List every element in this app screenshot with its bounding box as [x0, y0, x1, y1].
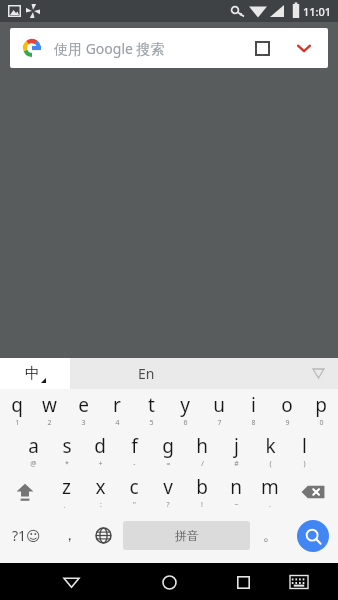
button[interactable]: q	[0, 389, 33, 430]
staticText: 。	[263, 527, 277, 545]
staticText: ?	[166, 500, 170, 510]
staticText: 4	[115, 418, 120, 428]
staticText: "	[133, 500, 136, 510]
button[interactable]: u	[202, 389, 236, 430]
staticText: y	[180, 392, 190, 418]
staticText: 5	[149, 418, 154, 428]
staticText: q	[11, 392, 23, 418]
button[interactable]: o	[270, 389, 304, 430]
staticText: En	[138, 364, 155, 383]
staticText: -	[133, 459, 136, 469]
button[interactable]: Change language	[86, 512, 120, 559]
button[interactable]: m	[253, 471, 287, 512]
staticText: b	[196, 474, 208, 500]
staticText: :	[100, 500, 102, 510]
button[interactable]: k	[253, 430, 287, 471]
staticText: 使用 Google 搜索	[54, 39, 165, 58]
staticText: j	[234, 433, 239, 459]
button[interactable]: Recents	[226, 565, 260, 599]
staticText: r	[113, 392, 121, 418]
staticText: ，	[62, 526, 77, 545]
staticText: !	[201, 500, 203, 510]
staticText: e	[78, 392, 89, 418]
staticText: 3	[81, 418, 86, 428]
staticText: 6	[183, 418, 188, 428]
staticText: f	[131, 433, 138, 459]
button[interactable]: Expand	[292, 36, 316, 60]
button[interactable]: 拼音	[123, 521, 250, 550]
staticText: *	[65, 459, 69, 469]
button[interactable]: l	[287, 430, 321, 471]
staticText: n	[230, 474, 242, 500]
staticText: ~	[234, 500, 239, 510]
button[interactable]: p	[304, 389, 338, 430]
button[interactable]: j	[219, 430, 253, 471]
staticText: @	[30, 459, 37, 469]
button[interactable]: a	[17, 430, 50, 471]
staticText: h	[196, 433, 208, 459]
staticText: ?1☺	[12, 526, 41, 545]
staticText: d	[94, 433, 106, 459]
button[interactable]: h	[185, 430, 219, 471]
button[interactable]: 使用 Google 搜索	[10, 28, 328, 68]
button[interactable]: z	[50, 471, 83, 512]
staticText: m	[261, 474, 279, 500]
button[interactable]: Google Lens	[250, 36, 274, 60]
staticText: w	[42, 392, 57, 418]
staticText: =	[166, 459, 171, 469]
button[interactable]: ?1☺	[0, 512, 52, 559]
button[interactable]: 中	[0, 358, 70, 389]
staticText: g	[162, 433, 174, 459]
staticText: 9	[285, 418, 290, 428]
button[interactable]: ，	[52, 512, 86, 559]
button[interactable]: b	[185, 471, 219, 512]
button[interactable]: d	[83, 430, 117, 471]
button[interactable]: v	[151, 471, 185, 512]
staticText: #	[234, 459, 239, 469]
staticText: o	[281, 392, 293, 418]
staticText: (	[269, 459, 272, 469]
staticText: z	[62, 474, 71, 500]
button[interactable]: f	[117, 430, 151, 471]
staticText: 0	[319, 418, 324, 428]
button[interactable]: Shift	[0, 471, 50, 512]
staticText: 1	[15, 418, 20, 428]
staticText: k	[265, 433, 276, 459]
button[interactable]: x	[83, 471, 117, 512]
staticText: p	[315, 392, 327, 418]
button[interactable]: g	[151, 430, 185, 471]
button[interactable]: Switch keyboard	[282, 565, 316, 599]
button[interactable]: Back	[54, 565, 88, 599]
button[interactable]: Home	[152, 565, 186, 599]
staticText: 2	[47, 418, 52, 428]
staticText: a	[28, 433, 39, 459]
staticText: t	[148, 392, 155, 418]
staticText: x	[95, 474, 106, 500]
staticText: 8	[251, 418, 256, 428]
staticText: /	[201, 459, 204, 469]
button[interactable]: c	[117, 471, 151, 512]
staticText: l	[302, 433, 307, 459]
button[interactable]: r	[100, 389, 134, 430]
button[interactable]: i	[236, 389, 270, 430]
button[interactable]: y	[168, 389, 202, 430]
staticText: u	[213, 392, 225, 418]
staticText: 拼音	[175, 528, 199, 543]
button[interactable]: s	[50, 430, 83, 471]
button[interactable]: En	[70, 358, 338, 389]
staticText: 7	[217, 418, 222, 428]
button[interactable]: w	[33, 389, 66, 430]
button[interactable]: Backspace	[287, 471, 338, 512]
staticText: )	[303, 459, 306, 469]
button[interactable]: Search	[287, 512, 338, 559]
staticText: v	[163, 474, 173, 500]
staticText: c	[129, 474, 139, 500]
button[interactable]: e	[66, 389, 100, 430]
button[interactable]: 。	[253, 512, 287, 559]
button[interactable]: n	[219, 471, 253, 512]
staticText: 中	[25, 364, 40, 383]
staticText: 、	[63, 500, 70, 509]
button[interactable]: t	[134, 389, 168, 430]
staticText: s	[62, 433, 72, 459]
staticText: +	[98, 459, 103, 469]
